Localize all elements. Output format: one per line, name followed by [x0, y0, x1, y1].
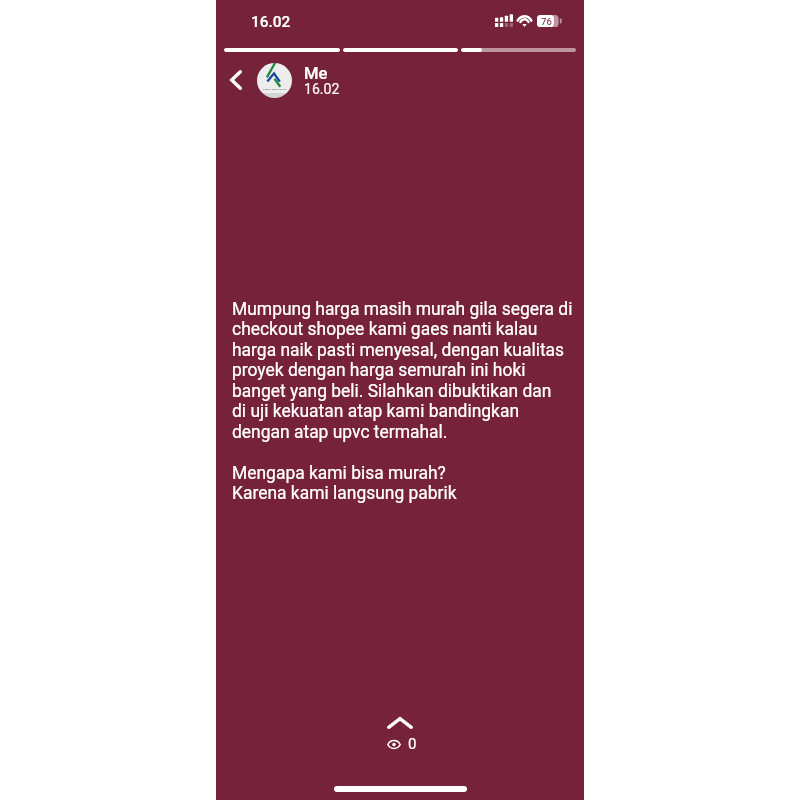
staticText: di uji kekuatan atap kami bandingkan: [232, 401, 520, 421]
staticText: 0: [408, 735, 417, 753]
button[interactable]: Story segment: [224, 48, 340, 52]
button[interactable]: Story segment: [461, 48, 576, 52]
staticText: Me: [304, 64, 328, 83]
staticText: 16.02: [251, 13, 291, 31]
staticText: Mengapa kami bisa murah?: [232, 463, 446, 483]
staticText: 16.02: [304, 81, 340, 98]
staticText: dengan atap upvc termahal.: [232, 422, 448, 442]
staticText: harga naik pasti menyesal, dengan kualit…: [232, 340, 565, 360]
staticText: MEGA ROOF UPVC: [263, 88, 287, 91]
button[interactable]: Back: [216, 60, 256, 100]
staticText: checkout shopee kami gaes nanti kalau: [232, 319, 538, 339]
button[interactable]: 0: [375, 732, 429, 756]
button[interactable]: Swipe up to see viewers: [360, 706, 440, 740]
button[interactable]: Next story: [216, 0, 584, 800]
staticText: Mumpung harga masih murah gila segera di: [232, 299, 573, 319]
staticText: 76: [541, 16, 552, 27]
staticText: Karena kami langsung pabrik: [232, 483, 457, 503]
button[interactable]: Story segment: [343, 48, 458, 52]
staticText: proyek dengan harga semurah ini hoki: [232, 360, 526, 380]
button[interactable]: Profile photo: [257, 63, 292, 98]
staticText: banget yang beli. Silahkan dibuktikan da…: [232, 381, 552, 401]
